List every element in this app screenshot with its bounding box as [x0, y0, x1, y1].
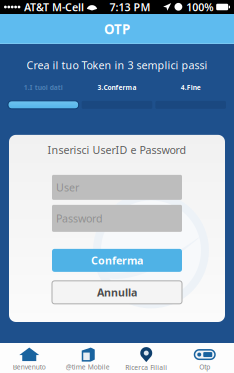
button[interactable]: Otp: [175, 343, 234, 373]
staticText: Conferma: [91, 253, 143, 267]
staticText: Inserisci UserID e Password: [47, 143, 186, 157]
staticText: User: [56, 180, 79, 194]
staticText: Benvenuto: [13, 363, 46, 371]
button[interactable]: Annulla: [9, 272, 225, 304]
staticText: AT&T M-Cell: [24, 0, 84, 14]
staticText: Ricerca Filiali: [125, 363, 167, 372]
staticText: 4.Fine: [181, 83, 201, 92]
staticText: 100%: [186, 0, 213, 14]
button[interactable]: Benvenuto: [0, 343, 58, 373]
button[interactable]: Conferma: [9, 232, 225, 272]
staticText: @time Mobile: [66, 363, 110, 371]
staticText: 3.Conferma: [97, 83, 136, 92]
staticText: Annulla: [97, 285, 137, 299]
staticText: 7:13 PM: [110, 0, 151, 14]
staticText: Otp: [199, 363, 210, 371]
staticText: Crea il tuo Token in 3 semplici passi: [26, 58, 207, 72]
staticText: OTP: [104, 20, 130, 38]
button[interactable]: @time Mobile: [58, 343, 117, 373]
staticText: 1.I tuoi dati: [24, 83, 63, 92]
button[interactable]: Ricerca Filiali: [117, 343, 175, 373]
staticText: Password: [56, 211, 103, 225]
